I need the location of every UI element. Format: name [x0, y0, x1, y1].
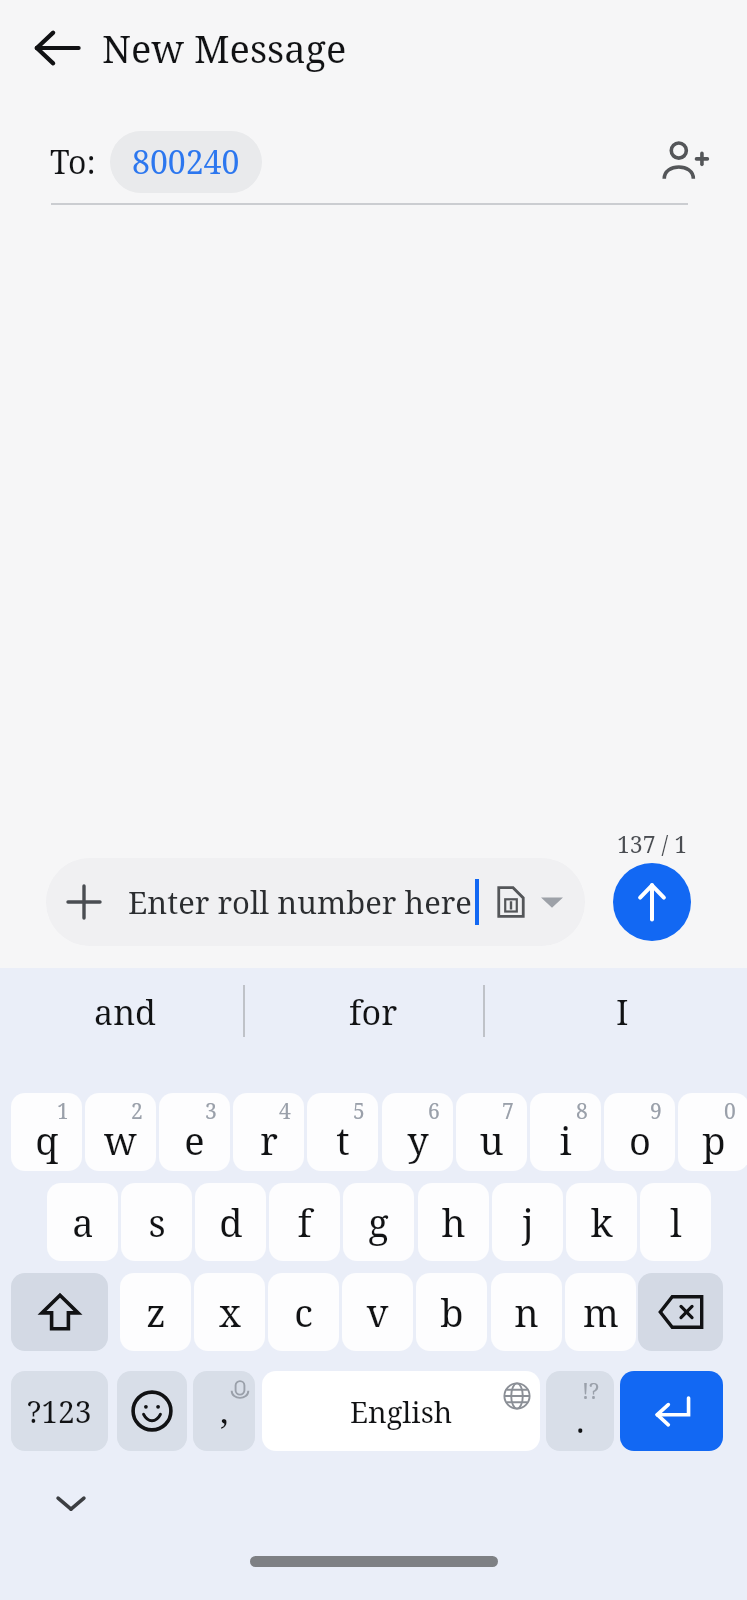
staticText: Enter roll number here	[128, 881, 472, 923]
button[interactable]: Hide keyboard	[48, 1480, 94, 1526]
staticText: w	[104, 1114, 137, 1166]
button[interactable]: and	[0, 968, 249, 1056]
button[interactable]: j	[492, 1183, 563, 1261]
button[interactable]: ?123	[11, 1371, 108, 1451]
staticText: 8	[576, 1097, 588, 1126]
staticText: and	[94, 989, 156, 1035]
button[interactable]: 9	[604, 1093, 675, 1171]
button[interactable]: m	[565, 1273, 636, 1351]
staticText: t	[336, 1114, 350, 1166]
button[interactable]: 800240	[110, 131, 262, 193]
staticText: q	[35, 1114, 59, 1166]
button[interactable]: 1	[11, 1093, 82, 1171]
staticText: z	[146, 1286, 166, 1338]
button[interactable]: v	[342, 1273, 413, 1351]
button[interactable]: n	[491, 1273, 562, 1351]
button[interactable]: z	[120, 1273, 191, 1351]
staticText: New Message	[102, 22, 347, 74]
button[interactable]: a	[47, 1183, 118, 1261]
staticText: 9	[650, 1097, 662, 1126]
button[interactable]: 0	[678, 1093, 747, 1171]
staticText: 2	[131, 1097, 143, 1126]
button[interactable]: 3	[159, 1093, 230, 1171]
button[interactable]: 5	[307, 1093, 378, 1171]
staticText: 137 / 1	[617, 828, 688, 859]
button[interactable]: Backspace	[638, 1273, 723, 1351]
button[interactable]: I	[498, 968, 747, 1056]
staticText: I	[616, 989, 629, 1035]
staticText: m	[583, 1286, 619, 1338]
button[interactable]: Shift	[11, 1273, 108, 1351]
staticText: u	[479, 1114, 504, 1166]
button[interactable]: 8	[530, 1093, 601, 1171]
button[interactable]: Send	[613, 863, 691, 941]
button[interactable]: 6	[382, 1093, 453, 1171]
staticText: To:	[50, 140, 96, 184]
button[interactable]: Period	[546, 1371, 614, 1451]
staticText: i	[559, 1114, 572, 1166]
staticText: l	[670, 1196, 682, 1248]
button[interactable]: 7	[456, 1093, 527, 1171]
staticText: d	[219, 1196, 243, 1248]
staticText: a	[72, 1196, 94, 1248]
staticText: y	[407, 1114, 429, 1166]
button[interactable]: 4	[233, 1093, 304, 1171]
staticText: 5	[353, 1097, 365, 1126]
staticText: 1	[57, 1097, 69, 1126]
button[interactable]: Attach	[46, 858, 585, 946]
button[interactable]: b	[416, 1273, 487, 1351]
button[interactable]: SIM 1	[494, 858, 563, 946]
staticText: for	[349, 989, 398, 1035]
button[interactable]: Comma	[193, 1371, 255, 1451]
staticText: k	[590, 1196, 613, 1248]
staticText: English	[350, 1392, 453, 1431]
staticText: 0	[724, 1097, 736, 1126]
button[interactable]: 2	[85, 1093, 156, 1171]
button[interactable]: s	[121, 1183, 192, 1261]
staticText: s	[148, 1196, 166, 1248]
staticText: h	[441, 1196, 466, 1248]
staticText: v	[366, 1286, 389, 1338]
button[interactable]: g	[343, 1183, 414, 1261]
staticText: 6	[428, 1097, 440, 1126]
button[interactable]: c	[268, 1273, 339, 1351]
button[interactable]: Enter	[620, 1371, 723, 1451]
staticText: b	[440, 1286, 464, 1338]
button[interactable]: Back	[18, 9, 96, 87]
button[interactable]: f	[269, 1183, 340, 1261]
staticText: .	[576, 1397, 585, 1443]
button[interactable]: k	[566, 1183, 637, 1261]
staticText: !?	[582, 1377, 599, 1406]
staticText: 800240	[132, 140, 240, 184]
button[interactable]: x	[194, 1273, 265, 1351]
staticText: p	[702, 1114, 726, 1166]
button[interactable]: Add contact	[645, 123, 723, 201]
staticText: o	[629, 1114, 651, 1166]
staticText: g	[368, 1196, 389, 1248]
staticText: f	[297, 1196, 312, 1248]
staticText: ,	[220, 1387, 229, 1433]
button[interactable]: for	[249, 968, 498, 1056]
button[interactable]: d	[195, 1183, 266, 1261]
button[interactable]: Attach	[46, 864, 122, 940]
staticText: e	[184, 1114, 205, 1166]
staticText: r	[260, 1114, 278, 1166]
staticText: j	[522, 1196, 534, 1248]
staticText: n	[514, 1286, 539, 1338]
button[interactable]: l	[640, 1183, 711, 1261]
button[interactable]: Emoji	[117, 1371, 187, 1451]
staticText: x	[219, 1286, 241, 1338]
button[interactable]: English	[262, 1371, 540, 1451]
button[interactable]: h	[418, 1183, 489, 1261]
staticText: c	[294, 1286, 313, 1338]
staticText: 3	[205, 1097, 217, 1126]
staticText: ?123	[27, 1391, 92, 1432]
staticText: 7	[502, 1097, 514, 1126]
staticText: 4	[279, 1097, 291, 1126]
